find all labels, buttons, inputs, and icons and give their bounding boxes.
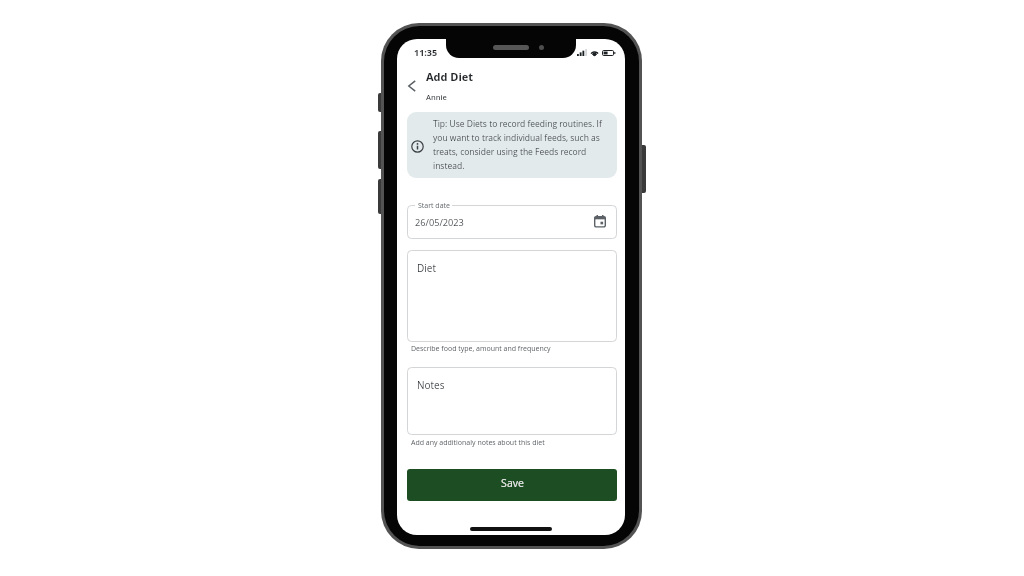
button[interactable]: Notes (407, 367, 617, 435)
button[interactable]: Start date (407, 205, 617, 239)
staticText: Notes (417, 378, 445, 392)
button[interactable]: Back (401, 75, 423, 97)
button[interactable]: Diet (407, 250, 617, 342)
staticText: Start date (418, 201, 450, 211)
staticText: 26/05/2023 (415, 216, 464, 229)
staticText: Add any additionaly notes about this die… (411, 438, 545, 448)
staticText: Diet (417, 261, 436, 275)
staticText: Add Diet (426, 69, 474, 84)
staticText: Tip: Use Diets to record feeding routine… (433, 118, 609, 171)
staticText: Annie (426, 92, 447, 102)
button[interactable]: Save (407, 469, 617, 501)
button[interactable]: Open date picker (592, 213, 608, 229)
staticText: Describe food type, amount and frequency (411, 344, 551, 354)
staticText: 11:35 (414, 46, 438, 58)
staticText: Save (501, 476, 524, 490)
